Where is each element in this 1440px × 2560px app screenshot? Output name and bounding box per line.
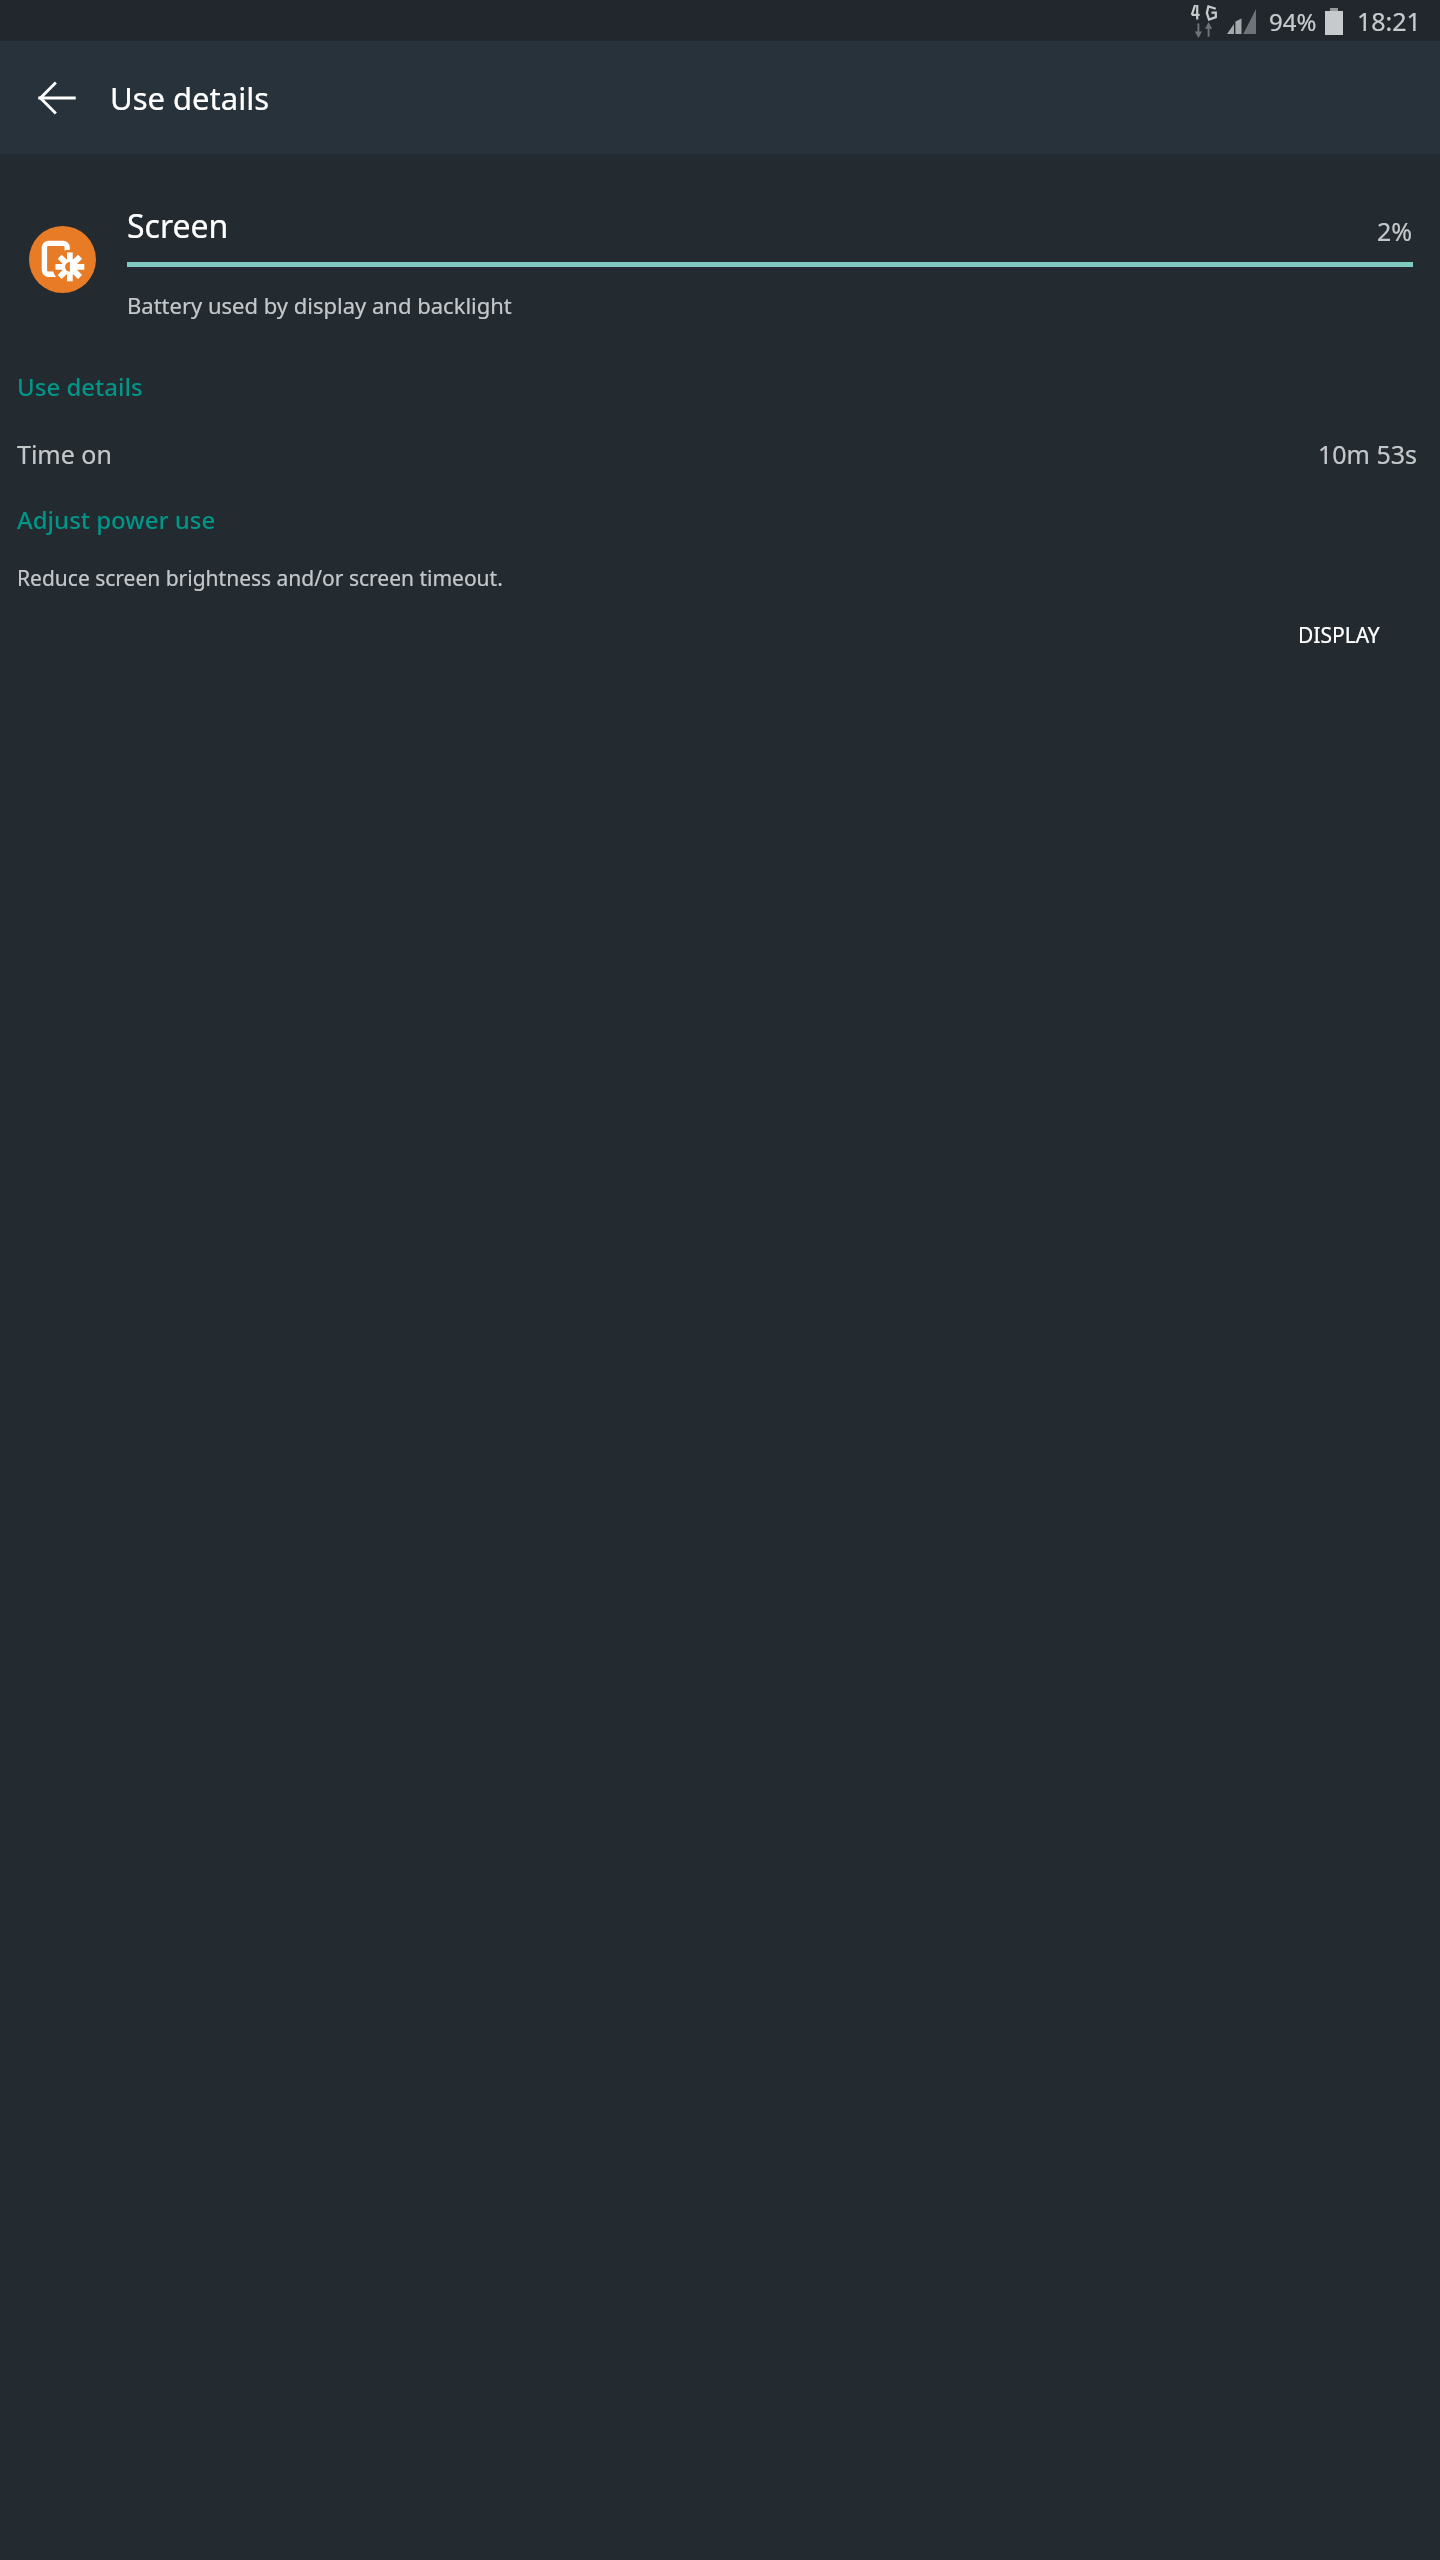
staticText: Reduce screen brightness and/or screen t…	[17, 564, 503, 593]
button[interactable]: Back	[27, 68, 87, 128]
staticText: Use details	[110, 77, 270, 119]
button[interactable]: Time on	[0, 427, 1440, 481]
staticText: Time on	[17, 437, 1318, 471]
staticText: Battery used by display and backlight	[127, 290, 512, 320]
button[interactable]: DISPLAY	[1284, 611, 1394, 660]
staticText: 2%	[1377, 214, 1413, 248]
staticText: 94%	[1269, 5, 1317, 38]
staticText: DISPLAY	[1298, 621, 1380, 650]
staticText: Use details	[17, 370, 143, 403]
staticText: 18:21	[1357, 4, 1421, 38]
staticText: 10m 53s	[1318, 437, 1418, 471]
staticText: Adjust power use	[17, 503, 216, 536]
staticText: Screen	[127, 204, 1377, 248]
